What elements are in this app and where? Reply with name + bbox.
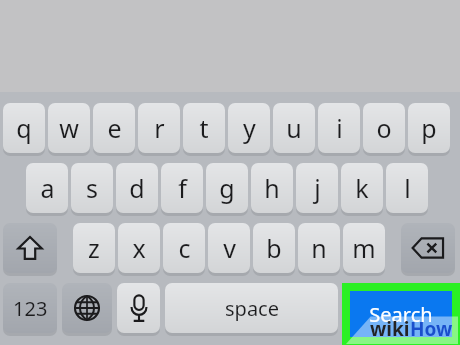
button[interactable]: u <box>273 103 315 155</box>
staticText: Search <box>369 301 433 328</box>
staticText: space <box>225 295 279 322</box>
button[interactable]: y <box>228 103 270 155</box>
button[interactable]: space <box>165 283 338 335</box>
button[interactable]: Change keyboard <box>62 283 112 335</box>
staticText: a <box>40 171 55 205</box>
button[interactable]: o <box>363 103 405 155</box>
staticText: l <box>404 171 411 205</box>
button[interactable]: q <box>3 103 45 155</box>
staticText: o <box>376 111 392 145</box>
button[interactable]: x <box>118 223 160 275</box>
button[interactable]: k <box>341 163 383 215</box>
staticText: x <box>132 231 146 265</box>
button[interactable]: z <box>73 223 115 275</box>
button[interactable]: i <box>318 103 360 155</box>
button[interactable]: v <box>208 223 250 275</box>
staticText: i <box>336 111 343 145</box>
staticText: n <box>311 231 327 265</box>
staticText: u <box>286 111 302 145</box>
staticText: z <box>88 231 100 265</box>
staticText: c <box>178 231 191 265</box>
button[interactable]: h <box>251 163 293 215</box>
staticText: h <box>264 171 280 205</box>
button[interactable]: c <box>163 223 205 275</box>
staticText: r <box>154 111 165 145</box>
staticText: d <box>129 171 145 205</box>
button[interactable]: s <box>71 163 113 215</box>
button[interactable]: l <box>386 163 428 215</box>
staticText: p <box>421 111 437 145</box>
button[interactable]: m <box>343 223 385 275</box>
staticText: How <box>410 316 453 342</box>
staticText: e <box>107 111 122 145</box>
staticText: t <box>199 111 209 145</box>
button[interactable]: j <box>296 163 338 215</box>
staticText: m <box>352 231 376 265</box>
staticText: j <box>314 171 321 205</box>
button[interactable]: n <box>298 223 340 275</box>
button[interactable]: Shift <box>3 223 57 275</box>
button[interactable]: a <box>26 163 68 215</box>
button[interactable]: r <box>138 103 180 155</box>
staticText: v <box>223 231 236 265</box>
staticText: b <box>266 231 282 265</box>
button[interactable]: e <box>93 103 135 155</box>
button[interactable]: f <box>161 163 203 215</box>
button[interactable]: Dictate <box>117 283 160 335</box>
staticText: f <box>178 171 187 205</box>
staticText: k <box>355 171 369 205</box>
button[interactable]: Search <box>342 283 460 345</box>
button[interactable]: t <box>183 103 225 155</box>
staticText: g <box>219 171 235 205</box>
staticText: s <box>86 171 98 205</box>
staticText: q <box>16 111 32 145</box>
staticText: y <box>243 111 256 145</box>
button[interactable]: g <box>206 163 248 215</box>
button[interactable]: w <box>48 103 90 155</box>
button[interactable]: 123 <box>3 283 57 335</box>
button[interactable]: d <box>116 163 158 215</box>
button[interactable]: p <box>408 103 450 155</box>
button[interactable]: Backspace <box>401 223 455 275</box>
button[interactable]: b <box>253 223 295 275</box>
staticText: 123 <box>13 295 48 322</box>
staticText: wiki <box>370 316 410 342</box>
staticText: w <box>59 111 79 145</box>
